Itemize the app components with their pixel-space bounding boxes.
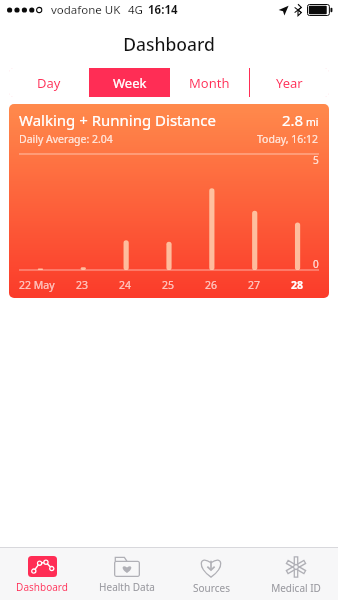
staticText: 5 — [313, 153, 319, 167]
staticText: Medical ID — [271, 581, 321, 595]
staticText: Health Data — [99, 580, 155, 594]
staticText: Day — [37, 74, 61, 92]
button[interactable]: Year — [250, 68, 329, 97]
other: Health Data — [114, 556, 140, 577]
staticText: Daily Average: 2.04 — [19, 132, 113, 146]
staticText: vodafone UK — [51, 2, 121, 18]
button[interactable]: Medical ID — [254, 548, 338, 600]
staticText: Dashboard — [123, 32, 215, 56]
staticText: 25 — [162, 278, 175, 292]
staticText: 0 — [313, 257, 319, 271]
staticText: Walking + Running Distance — [19, 110, 216, 130]
button[interactable]: Month — [170, 68, 249, 97]
staticText: Sources — [193, 581, 230, 595]
staticText: mi — [306, 115, 319, 129]
staticText: 2.8 — [282, 110, 304, 130]
staticText: Dashboard — [16, 580, 68, 594]
staticText: Month — [189, 74, 230, 92]
button[interactable]: Health Data — [85, 548, 169, 600]
staticText: Today, 16:12 — [257, 132, 319, 146]
button[interactable]: Walking + Running Distance — [9, 104, 329, 298]
staticText: Week — [113, 74, 147, 92]
staticText: 24 — [119, 278, 132, 292]
staticText: 4G — [128, 2, 143, 18]
button[interactable]: Dashboard — [0, 548, 84, 600]
staticText: Year — [276, 74, 303, 92]
other: Dashboard — [28, 556, 57, 577]
staticText: 26 — [205, 278, 218, 292]
other: Sources — [198, 556, 224, 578]
button[interactable]: Sources — [169, 548, 253, 600]
button[interactable]: Day — [9, 68, 89, 97]
staticText: 22 May — [19, 278, 55, 292]
button[interactable]: Week — [90, 68, 169, 97]
staticText: 27 — [248, 278, 261, 292]
staticText: 28 — [291, 278, 304, 292]
staticText: 23 — [76, 278, 89, 292]
staticText: 16:14 — [148, 2, 178, 18]
other: Medical ID — [285, 556, 307, 578]
